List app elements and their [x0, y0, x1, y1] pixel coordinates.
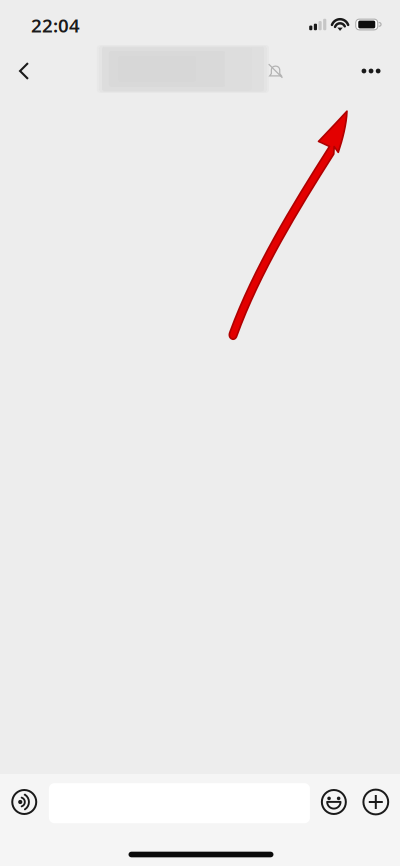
- button[interactable]: More: [358, 776, 400, 828]
- staticText: 22:04: [31, 13, 80, 38]
- button[interactable]: Voice message: [0, 776, 49, 828]
- button[interactable]: Emoji: [310, 776, 357, 828]
- button[interactable]: Back: [2, 48, 46, 94]
- button[interactable]: More options: [349, 48, 393, 94]
